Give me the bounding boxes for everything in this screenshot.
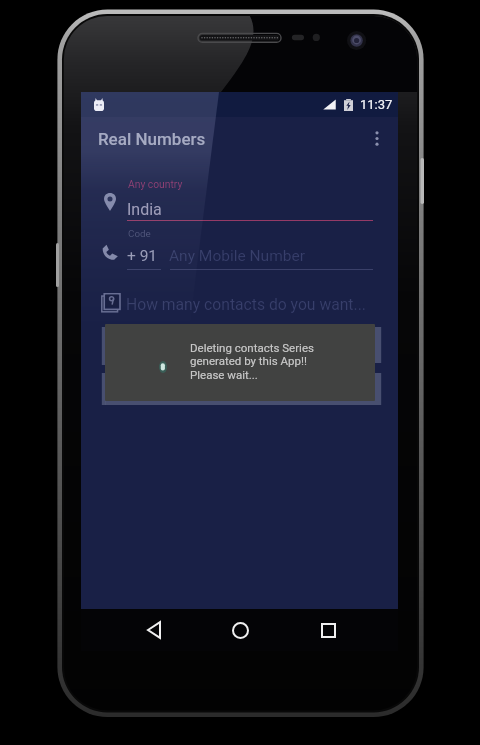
staticText: Code (128, 228, 151, 239)
button[interactable]: Deleting contacts Series generated by th… (105, 324, 375, 401)
button[interactable]: Home (218, 609, 262, 651)
button[interactable]: Back (132, 609, 176, 651)
staticText: Any country (128, 178, 183, 190)
button[interactable]: Recent apps (306, 609, 350, 651)
staticText: India (127, 200, 162, 219)
staticText: Deleting contacts Series generated by th… (190, 341, 314, 381)
staticText: + 91 (127, 247, 158, 265)
staticText: Real Numbers (98, 129, 206, 149)
staticText: How many contacts do you want... (126, 295, 366, 313)
button[interactable]: More options (355, 117, 398, 160)
staticText: 11:37 (360, 97, 393, 112)
staticText: Any Mobile Number (169, 247, 305, 265)
